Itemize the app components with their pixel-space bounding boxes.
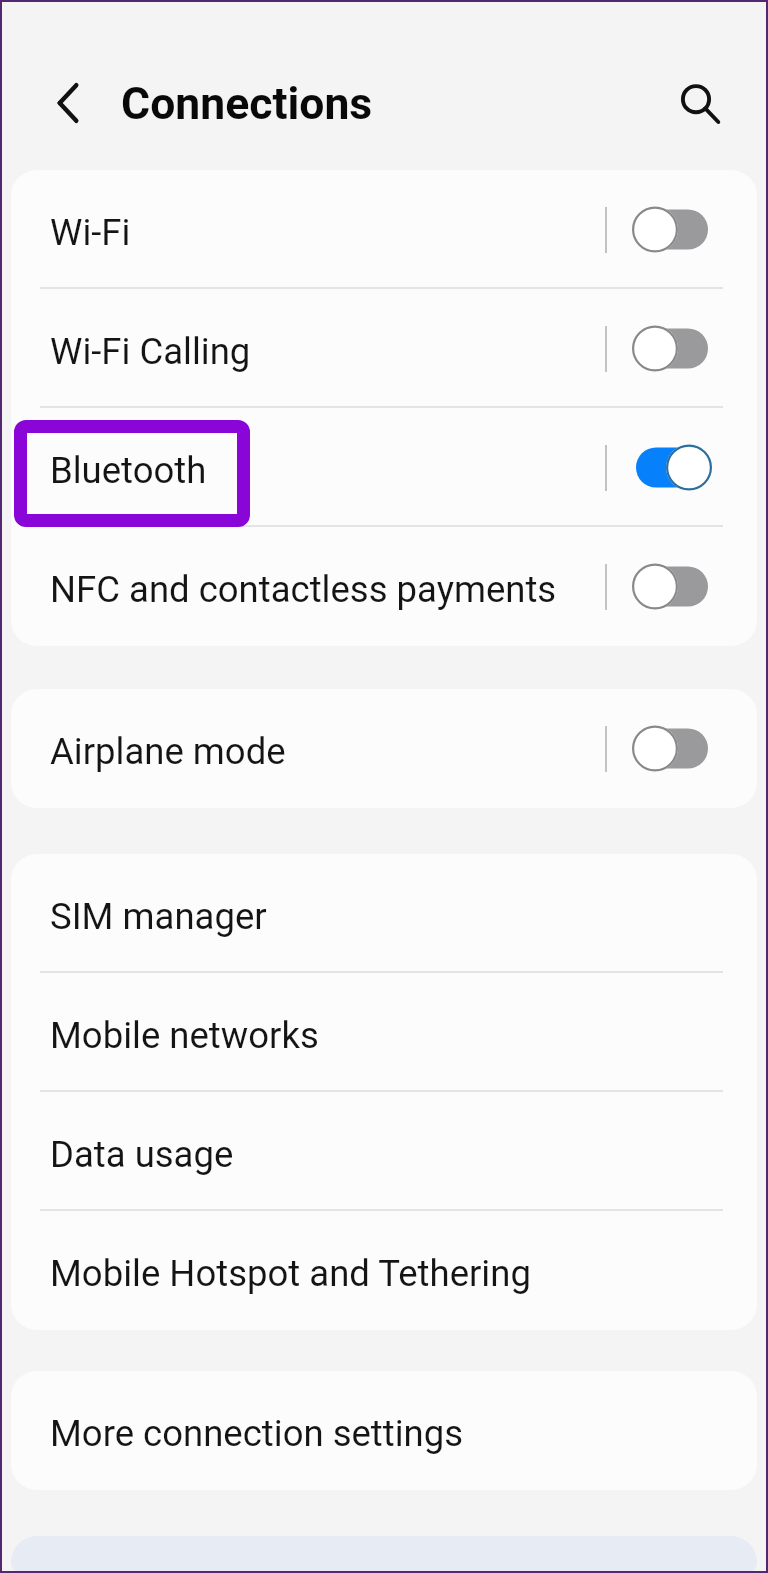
staticText: Connections — [121, 78, 373, 130]
button[interactable]: Airplane mode off — [607, 689, 757, 808]
button[interactable]: Mobile Hotspot and Tethering — [11, 1211, 757, 1330]
button[interactable]: Wi-Fi Calling — [11, 289, 757, 408]
staticText: Mobile networks — [50, 1014, 319, 1057]
button[interactable]: Bluetooth on — [607, 408, 757, 527]
button[interactable]: SIM manager — [11, 854, 757, 973]
button[interactable]: Airplane mode — [11, 689, 757, 808]
button[interactable]: Mobile networks — [11, 973, 757, 1092]
button[interactable]: Wi-Fi off — [607, 170, 757, 289]
staticText: Wi-Fi — [50, 211, 131, 254]
staticText: Data usage — [50, 1133, 234, 1176]
button[interactable] — [11, 1536, 757, 1573]
staticText: Bluetooth — [50, 449, 207, 492]
button[interactable]: Data usage — [11, 1092, 757, 1211]
staticText: More connection settings — [50, 1412, 464, 1455]
staticText: SIM manager — [50, 895, 267, 938]
button[interactable]: More connection settings — [11, 1371, 757, 1490]
button[interactable]: NFC and contactless payments — [11, 527, 757, 646]
button[interactable]: Wi-Fi — [11, 170, 757, 289]
staticText: Wi-Fi Calling — [50, 330, 251, 373]
button[interactable]: Back — [19, 54, 116, 151]
button[interactable]: Wi-Fi Calling off — [607, 289, 757, 408]
button[interactable]: Bluetooth — [11, 408, 757, 527]
staticText: NFC and contactless payments — [50, 568, 557, 611]
staticText: Mobile Hotspot and Tethering — [50, 1252, 531, 1295]
staticText: Airplane mode — [50, 730, 286, 773]
button[interactable]: Search — [647, 54, 744, 151]
button[interactable]: NFC and contactless payments off — [607, 527, 757, 646]
